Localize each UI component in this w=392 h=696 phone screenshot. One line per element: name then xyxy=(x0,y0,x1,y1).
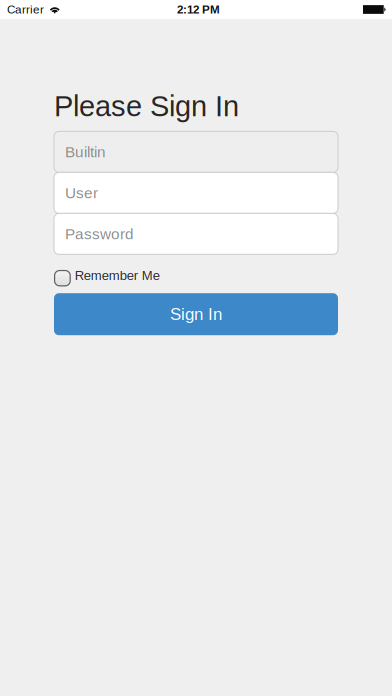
staticText: Sign In xyxy=(170,305,222,324)
staticText: 2:12 PM xyxy=(177,3,220,16)
button[interactable]: Remember Me xyxy=(0,270,392,286)
staticText: Password xyxy=(65,225,134,242)
staticText: User xyxy=(65,184,98,201)
staticText: Carrier xyxy=(7,3,44,16)
staticText: Please Sign In xyxy=(54,90,239,122)
staticText: Remember Me xyxy=(75,268,160,283)
button[interactable]: Sign In xyxy=(0,293,392,335)
staticText: Builtin xyxy=(65,143,106,160)
